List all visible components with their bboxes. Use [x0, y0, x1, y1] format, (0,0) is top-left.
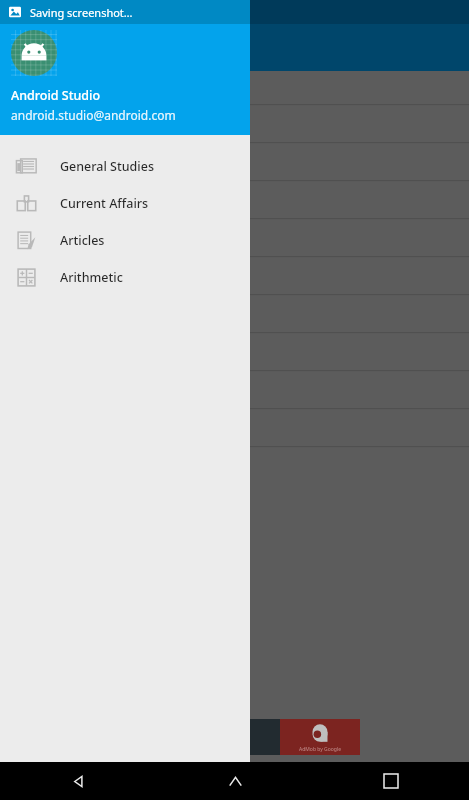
button[interactable]: Back [0, 762, 157, 800]
staticText: android.studio@android.com [11, 107, 176, 123]
button[interactable]: Current Affairs [0, 185, 250, 222]
button[interactable]: General Studies [0, 148, 250, 185]
staticText: Android Studio [11, 87, 101, 104]
button[interactable]: Arithmetic [0, 259, 250, 296]
staticText: Current Affairs [60, 195, 149, 212]
button[interactable]: Articles [0, 222, 250, 259]
button[interactable]: Android Studio [0, 24, 250, 135]
button[interactable]: Recent apps [313, 762, 469, 800]
staticText: General Studies [60, 158, 154, 175]
staticText: Articles [60, 232, 105, 249]
staticText: AdMob by Google [299, 746, 341, 753]
button[interactable]: Home [157, 762, 313, 800]
staticText: Saving screenshot… [30, 5, 133, 20]
staticText: Arithmetic [60, 269, 123, 286]
